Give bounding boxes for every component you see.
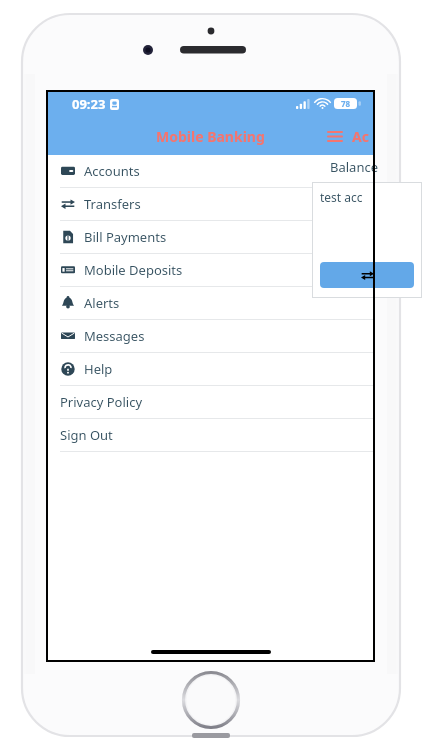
button[interactable]: Mobile Deposits xyxy=(46,254,375,286)
staticText: Sign Out xyxy=(60,426,113,444)
staticText: Balance xyxy=(330,158,378,176)
button[interactable]: Messages xyxy=(46,320,375,352)
button[interactable]: Help xyxy=(46,353,375,385)
staticText: Mobile Deposits xyxy=(84,261,183,279)
button[interactable]: Menu xyxy=(320,121,350,151)
staticText: Ac xyxy=(352,127,369,146)
staticText: Mobile Banking xyxy=(156,127,265,146)
staticText: Messages xyxy=(84,327,145,345)
button[interactable]: Alerts xyxy=(46,287,375,319)
staticText: Help xyxy=(84,360,113,378)
staticText: Transfers xyxy=(84,195,141,213)
button[interactable]: Bill Payments xyxy=(46,221,375,253)
button[interactable]: Privacy Policy xyxy=(46,386,375,418)
staticText: Bill Payments xyxy=(84,228,167,246)
button[interactable]: Sign Out xyxy=(46,419,375,451)
staticText: Accounts xyxy=(84,162,140,180)
button[interactable]: Accounts xyxy=(46,155,375,187)
staticText: test acc xyxy=(320,189,363,205)
staticText: 09:23 xyxy=(72,95,106,113)
staticText: 78 xyxy=(341,98,351,109)
staticText: Privacy Policy xyxy=(60,393,143,411)
button[interactable]: Ac xyxy=(350,127,371,146)
button[interactable]: Transfers xyxy=(46,188,375,220)
staticText: Alerts xyxy=(84,294,120,312)
button[interactable]: Transfer xyxy=(320,262,414,288)
button[interactable]: test acc xyxy=(312,182,422,298)
